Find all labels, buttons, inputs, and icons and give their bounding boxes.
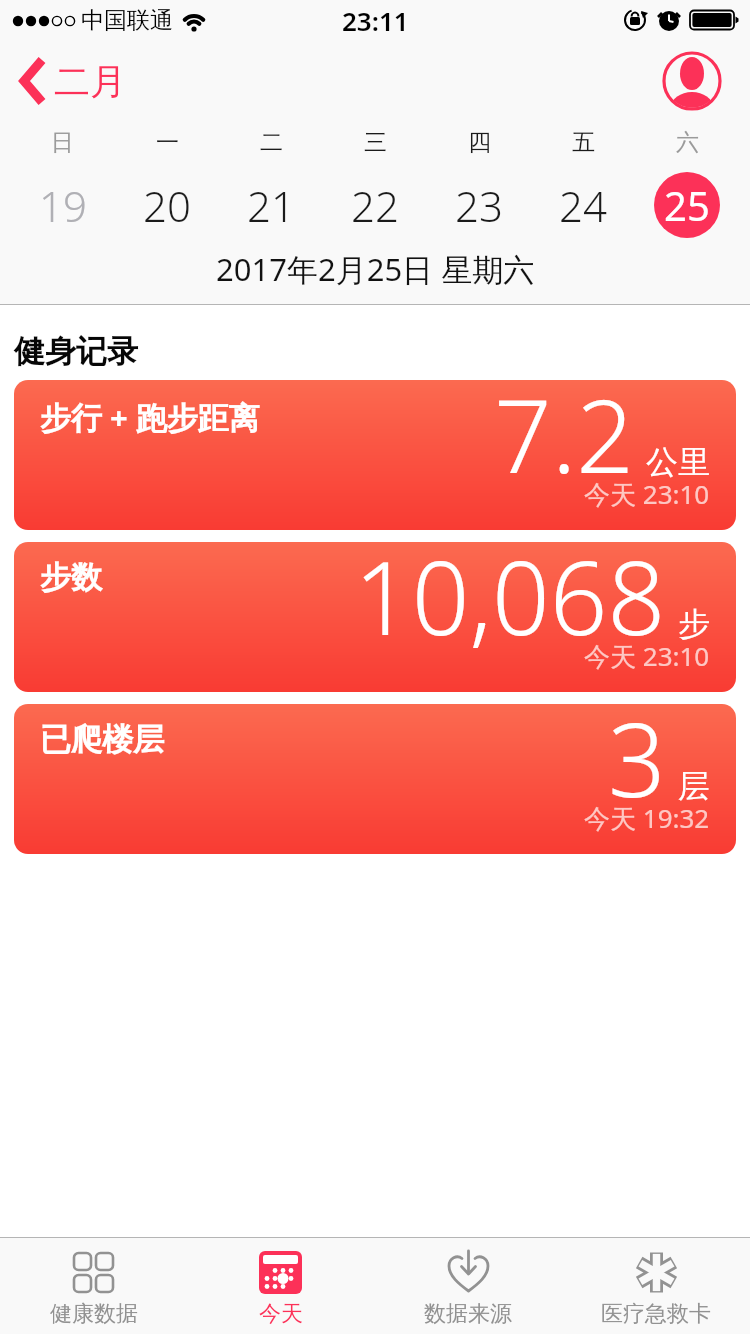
staticText: 层 (678, 766, 710, 806)
staticText: 日 (51, 128, 74, 157)
staticText: 今天 23:10 (584, 476, 710, 512)
button[interactable]: 数据来源 (374, 1238, 562, 1334)
button[interactable]: 19 (10, 162, 115, 248)
staticText: 健康数据 (50, 1300, 138, 1328)
staticText: 步数 (40, 558, 102, 597)
button[interactable]: 25 (635, 162, 739, 248)
button[interactable]: 已爬楼层 (14, 704, 736, 854)
staticText: 23 (455, 177, 503, 234)
staticText: 20 (143, 177, 191, 234)
staticText: 数据来源 (424, 1300, 512, 1328)
staticText: 中国联通 (81, 6, 173, 35)
staticText: 19 (39, 177, 87, 234)
staticText: 今天 (259, 1300, 303, 1328)
button[interactable]: 24 (531, 162, 635, 248)
staticText: 25 (664, 178, 710, 232)
staticText: 步 (678, 604, 710, 644)
button[interactable]: 21 (219, 162, 323, 248)
staticText: 22 (351, 177, 399, 234)
staticText: 21 (247, 177, 295, 234)
staticText: 医疗急救卡 (601, 1300, 711, 1328)
button[interactable]: 今天 (187, 1238, 374, 1334)
staticText: 二 (260, 128, 283, 157)
staticText: 健身记录 (14, 332, 138, 371)
staticText: 一 (156, 128, 179, 157)
staticText: 3 (608, 704, 666, 827)
staticText: 23:11 (342, 3, 409, 38)
staticText: 步行 + 跑步距离 (40, 396, 260, 438)
staticText: 已爬楼层 (40, 720, 164, 759)
button[interactable] (662, 51, 722, 111)
button[interactable]: 20 (115, 162, 219, 248)
staticText: 24 (559, 177, 607, 234)
button[interactable]: 步行 + 跑步距离 (14, 380, 736, 530)
staticText: 三 (364, 128, 387, 157)
button[interactable]: 医疗急救卡 (562, 1238, 750, 1334)
button[interactable]: 23 (427, 162, 531, 248)
staticText: 二月 (54, 59, 126, 104)
button[interactable]: 健康数据 (0, 1238, 187, 1334)
staticText: 7.2 (494, 380, 634, 503)
staticText: 今天 19:32 (584, 800, 710, 836)
staticText: 五 (572, 128, 595, 157)
staticText: 四 (468, 128, 491, 157)
staticText: 今天 23:10 (584, 638, 710, 674)
staticText: 10,068 (354, 542, 666, 665)
button[interactable]: 22 (323, 162, 427, 248)
button[interactable]: 步数 (14, 542, 736, 692)
staticText: 2017年2月25日 星期六 (216, 248, 535, 290)
staticText: 六 (676, 128, 699, 157)
button[interactable]: 二月 (20, 58, 126, 104)
staticText: 公里 (646, 442, 710, 482)
